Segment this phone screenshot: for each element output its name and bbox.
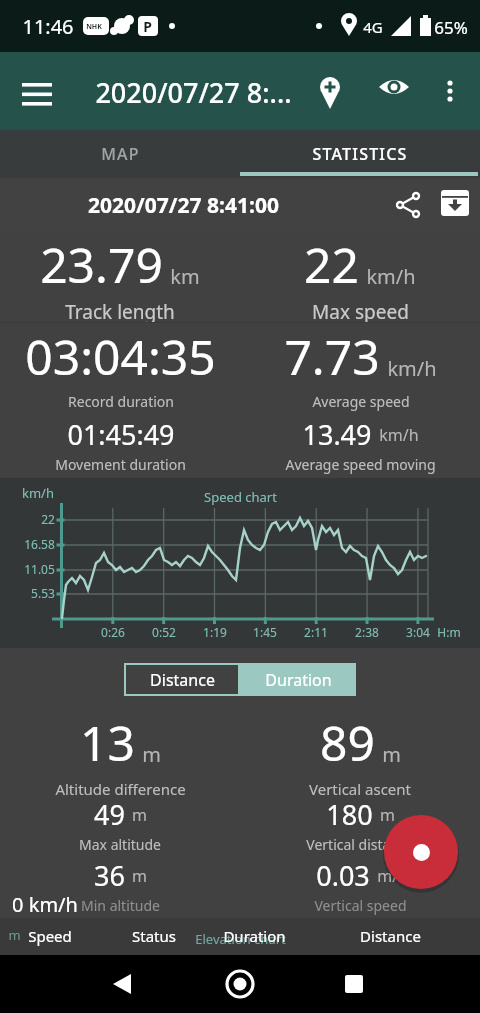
staticText: km/h bbox=[387, 355, 437, 382]
staticText: 11:46 bbox=[22, 13, 74, 40]
staticText: 11.05 bbox=[24, 561, 55, 577]
staticText: 7.73 bbox=[284, 324, 380, 389]
staticText: 4G bbox=[363, 17, 383, 37]
staticText: NHK bbox=[86, 22, 102, 32]
staticText: 22 bbox=[304, 232, 359, 297]
button[interactable] bbox=[441, 190, 471, 220]
button[interactable]: Duration bbox=[240, 663, 356, 696]
staticText: 1:45 bbox=[253, 624, 277, 640]
button[interactable] bbox=[100, 962, 144, 1006]
staticText: STATISTICS bbox=[312, 143, 408, 165]
staticText: 22 bbox=[41, 511, 55, 527]
staticText: Max speed bbox=[312, 299, 409, 322]
staticText: 01:45:49 bbox=[67, 416, 175, 453]
staticText: 65% bbox=[434, 16, 468, 39]
staticText: 5.53 bbox=[31, 585, 55, 601]
staticText: km bbox=[170, 263, 200, 290]
button[interactable] bbox=[218, 962, 262, 1006]
staticText: MAP bbox=[101, 143, 140, 165]
staticText: Vertical speed bbox=[314, 896, 407, 915]
button[interactable] bbox=[308, 69, 352, 113]
staticText: km/h bbox=[379, 424, 419, 446]
staticText: 2020/07/27 8:41:00 bbox=[88, 191, 279, 220]
button[interactable] bbox=[12, 76, 56, 120]
button[interactable] bbox=[428, 69, 472, 113]
staticText: m bbox=[142, 741, 161, 768]
staticText: 1:19 bbox=[203, 624, 227, 640]
button[interactable] bbox=[390, 185, 430, 225]
staticText: Duration bbox=[265, 669, 332, 691]
staticText: 0:52 bbox=[152, 624, 176, 640]
staticText: 2:38 bbox=[355, 624, 379, 640]
button[interactable]: MAP bbox=[0, 130, 240, 178]
staticText: 16.58 bbox=[24, 536, 55, 552]
staticText: Average speed bbox=[312, 392, 410, 411]
staticText: H:m bbox=[437, 624, 461, 640]
staticText: 13.49 bbox=[302, 416, 372, 453]
button[interactable] bbox=[384, 815, 458, 889]
button[interactable]: Distance bbox=[124, 663, 240, 696]
staticText: 89 bbox=[320, 710, 375, 775]
staticText: 0 km/h bbox=[12, 891, 78, 918]
staticText: Movement duration bbox=[55, 455, 186, 474]
staticText: P bbox=[143, 17, 152, 36]
staticText: 2:11 bbox=[304, 624, 328, 640]
staticText: km/h bbox=[366, 263, 416, 290]
staticText: Altitude difference bbox=[55, 779, 186, 796]
staticText: 23.79 bbox=[40, 232, 163, 297]
staticText: Vertical distance bbox=[306, 835, 414, 854]
staticText: m bbox=[382, 741, 401, 768]
button[interactable] bbox=[372, 65, 416, 109]
staticText: Max altitude bbox=[79, 835, 161, 854]
staticText: m bbox=[132, 804, 147, 826]
staticText: km/h bbox=[22, 484, 54, 502]
staticText: Record duration bbox=[68, 392, 174, 411]
staticText: Average speed moving bbox=[285, 455, 436, 474]
staticText: Speed chart bbox=[204, 488, 277, 506]
staticText: 0:26 bbox=[101, 624, 125, 640]
staticText: 2020/07/27 8:... bbox=[95, 74, 292, 111]
staticText: Min altitude bbox=[81, 896, 160, 915]
staticText: 0.03 bbox=[316, 857, 370, 894]
staticText: 49 bbox=[94, 796, 125, 833]
staticText: Duration bbox=[223, 926, 286, 946]
staticText: m bbox=[380, 804, 395, 826]
staticText: 03:04:35 bbox=[25, 324, 216, 389]
staticText: m bbox=[8, 926, 21, 944]
staticText: Speed bbox=[28, 926, 72, 946]
staticText: Status bbox=[132, 926, 176, 946]
staticText: m/s bbox=[377, 865, 406, 887]
staticText: Distance bbox=[360, 926, 421, 946]
button[interactable]: STATISTICS bbox=[240, 130, 480, 178]
staticText: Vertical ascent bbox=[309, 779, 411, 796]
staticText: Track length bbox=[65, 299, 175, 322]
staticText: 3:04 bbox=[406, 624, 430, 640]
staticText: 36 bbox=[94, 857, 125, 894]
staticText: Distance bbox=[150, 669, 215, 691]
button[interactable] bbox=[332, 962, 376, 1006]
staticText: 13 bbox=[80, 710, 135, 775]
staticText: m bbox=[132, 865, 147, 887]
staticText: Elevation chart bbox=[195, 930, 286, 948]
staticText: 180 bbox=[326, 796, 373, 833]
